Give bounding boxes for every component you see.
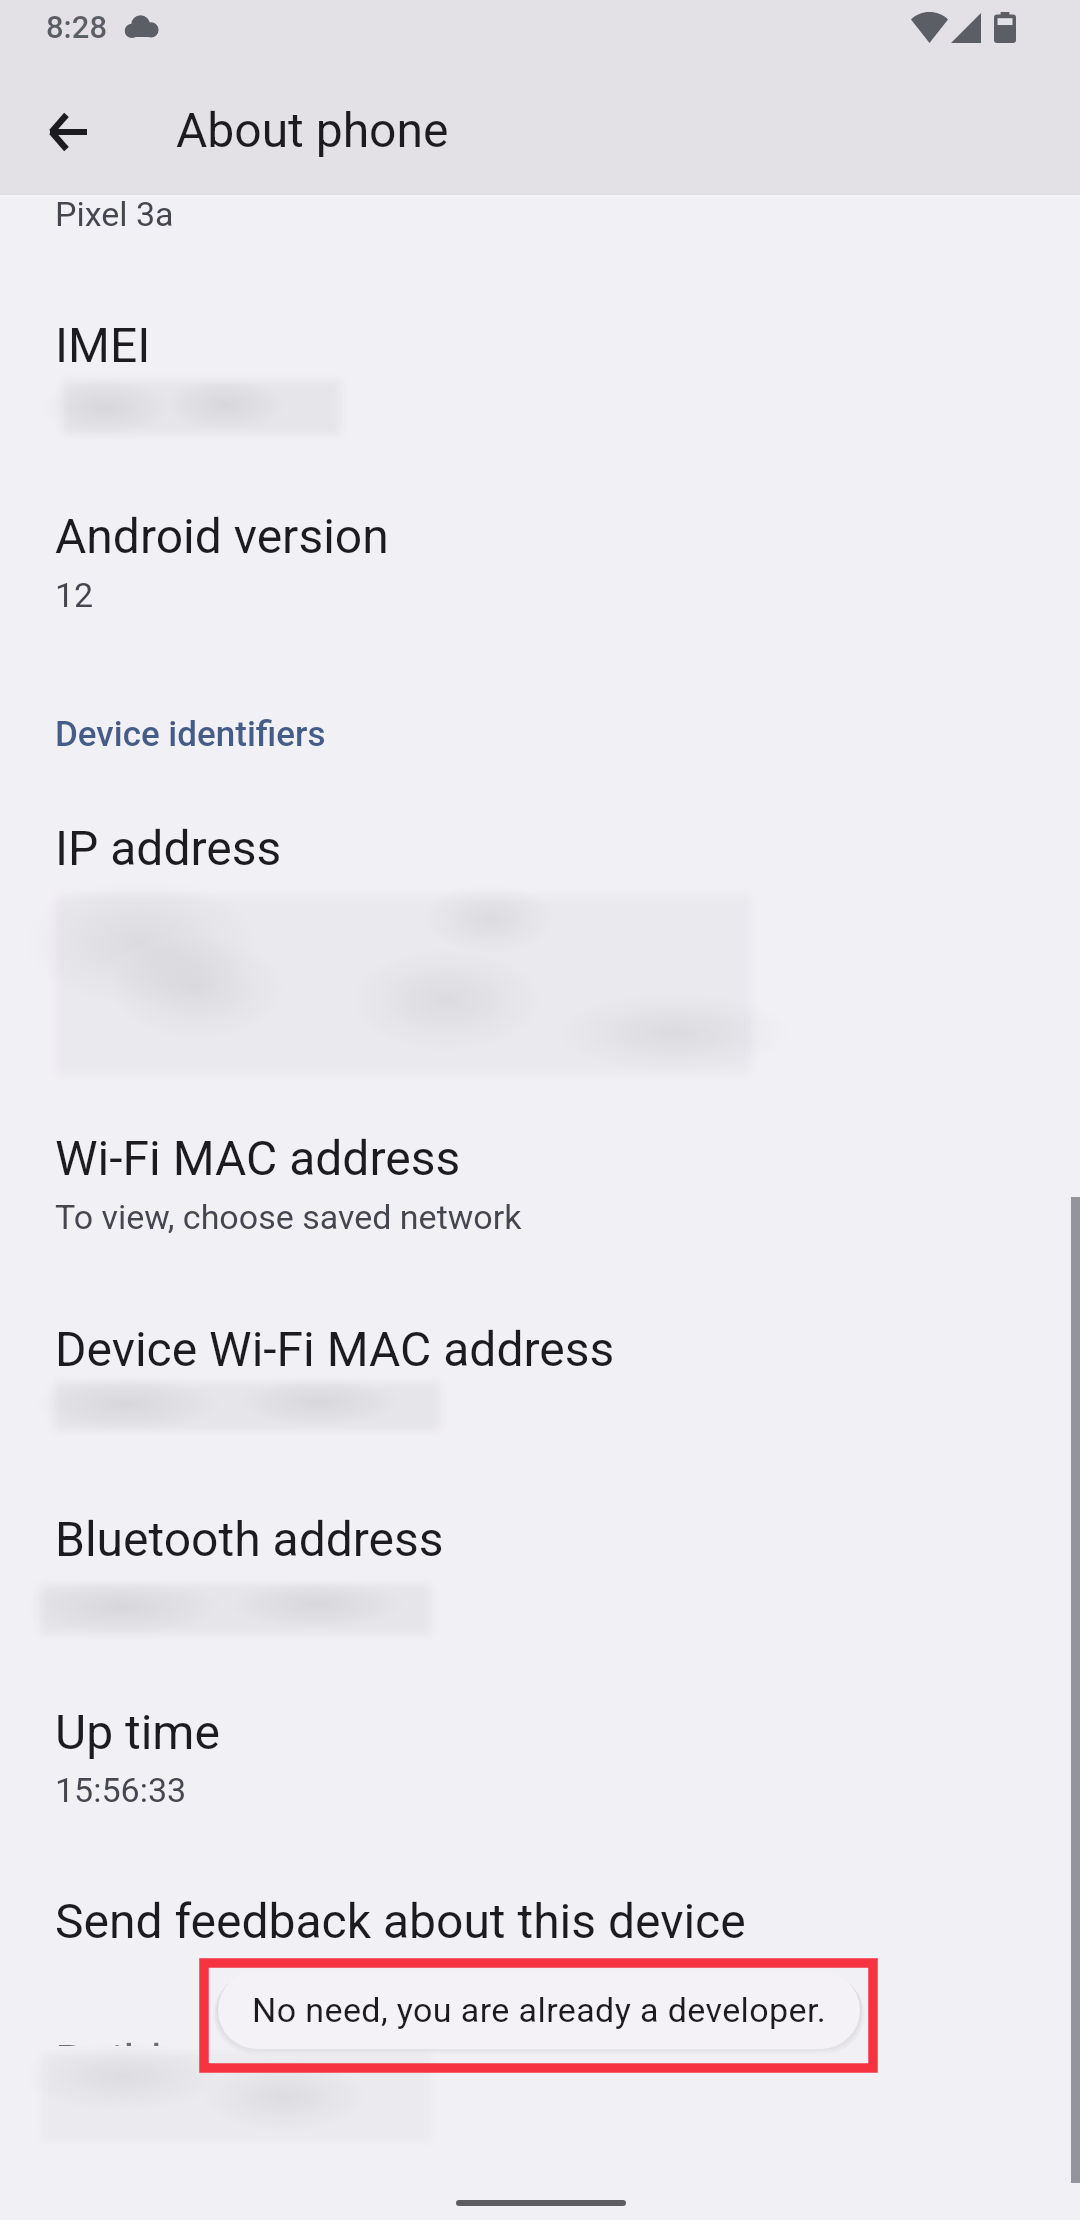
other: Battery <box>994 12 1016 43</box>
button[interactable]: Send feedback about this device <box>0 1875 1080 2005</box>
other: Wi-Fi <box>911 13 948 43</box>
button[interactable]: Wi-Fi MAC address <box>0 1115 1080 1295</box>
button[interactable]: Model, Pixel 3a <box>0 196 1080 316</box>
button[interactable]: Up time <box>0 1685 1080 1855</box>
button[interactable]: Android version 12 <box>0 490 1080 670</box>
staticText: No need, you are already a developer. <box>252 1990 827 2030</box>
staticText: To view, choose saved network <box>55 1197 522 1237</box>
staticText: Device identifiers <box>55 714 326 755</box>
staticText: Pixel 3a <box>55 194 174 234</box>
button[interactable]: Navigate up <box>26 90 110 174</box>
staticText: Device Wi-Fi MAC address <box>55 1321 615 1377</box>
staticText: 8:28 <box>46 9 108 45</box>
staticText: 15:56:33 <box>55 1770 187 1810</box>
button[interactable]: Device Wi-Fi MAC address <box>0 1305 1080 1485</box>
staticText: Bluetooth address <box>55 1511 444 1567</box>
staticText: About phone <box>176 102 449 158</box>
button[interactable]: IP address <box>0 800 1080 1110</box>
button[interactable]: No need, you are already a developer. <box>218 1971 860 2049</box>
button[interactable]: Device identifiers <box>0 690 1080 790</box>
staticText: Android version <box>55 508 389 564</box>
staticText: Wi-Fi MAC address <box>55 1130 461 1186</box>
staticText: 12 <box>55 575 94 615</box>
staticText: IP address <box>55 820 282 876</box>
other: Weather <box>124 15 160 39</box>
staticText: Up time <box>55 1704 220 1760</box>
button[interactable]: Bluetooth address <box>0 1495 1080 1675</box>
button[interactable]: Build number <box>0 2020 1080 2160</box>
other: Mobile signal <box>951 13 981 43</box>
staticText: Send feedback about this device <box>55 1893 746 1949</box>
staticText: Build number <box>55 2034 338 2090</box>
staticText: IMEI <box>55 317 151 373</box>
button[interactable]: IMEI <box>0 300 1080 480</box>
